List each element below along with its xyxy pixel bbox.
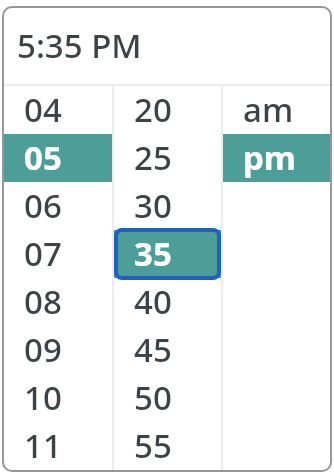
button[interactable]: 50 [114, 374, 221, 422]
button[interactable]: 35 [114, 230, 221, 278]
staticText: am [243, 87, 294, 132]
button[interactable]: 04 [4, 86, 112, 134]
button[interactable]: 25 [114, 134, 221, 182]
button[interactable]: am [223, 86, 330, 134]
button[interactable]: 08 [4, 278, 112, 326]
button[interactable]: 40 [114, 278, 221, 326]
button[interactable]: 05 [4, 134, 112, 182]
staticText: 07 [24, 231, 62, 276]
staticText: 06 [24, 183, 62, 228]
staticText: 08 [24, 279, 62, 324]
staticText: 50 [134, 375, 172, 420]
staticText: 05 [24, 135, 62, 180]
button[interactable]: 30 [114, 182, 221, 230]
button[interactable]: 07 [4, 230, 112, 278]
button[interactable]: 10 [4, 374, 112, 422]
staticText: 40 [134, 279, 172, 324]
staticText: 45 [134, 327, 172, 372]
staticText: 09 [24, 327, 62, 372]
button[interactable]: pm [223, 134, 330, 182]
staticText: pm [243, 135, 297, 180]
staticText: 04 [24, 87, 62, 132]
button[interactable]: 45 [114, 326, 221, 374]
button[interactable]: 06 [4, 182, 112, 230]
staticText: 30 [134, 183, 172, 228]
button[interactable]: 11 [4, 422, 112, 470]
button[interactable]: 20 [114, 86, 221, 134]
button[interactable]: Selected time 5:35 PM [4, 8, 330, 84]
staticText: 55 [134, 423, 172, 468]
button[interactable]: 09 [4, 326, 112, 374]
staticText: 11 [24, 423, 62, 468]
staticText: 20 [134, 87, 172, 132]
staticText: 25 [134, 135, 172, 180]
staticText: 10 [24, 375, 62, 420]
staticText: 35 [134, 231, 172, 276]
button[interactable]: 55 [114, 422, 221, 470]
staticText: 5:35 PM [17, 23, 142, 68]
